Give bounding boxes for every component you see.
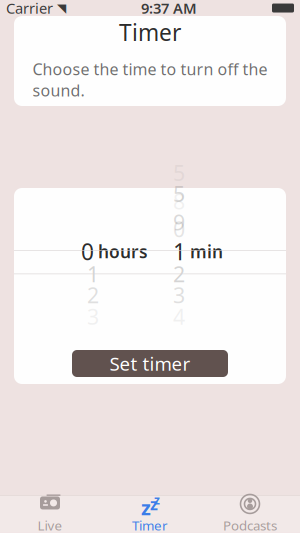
staticText: z	[154, 492, 160, 508]
staticText: Podcasts	[223, 516, 277, 533]
staticText: 3	[87, 302, 99, 331]
staticText: ◥	[57, 1, 66, 15]
button[interactable]: Live	[0, 496, 100, 533]
staticText: z	[150, 493, 158, 514]
staticText: hours	[98, 240, 148, 263]
staticText: 2	[173, 260, 185, 288]
staticText: 1	[87, 260, 99, 288]
staticText: 1	[173, 236, 186, 266]
staticText: Choose the time to turn off the sound.	[32, 58, 267, 101]
staticText: Timer	[119, 17, 181, 47]
staticText: 59	[173, 180, 185, 236]
staticText: 0	[81, 236, 94, 266]
staticText: min	[190, 240, 223, 263]
staticText: 3	[173, 281, 185, 309]
staticText: Carrier	[6, 0, 53, 18]
button[interactable]: Set timer	[72, 350, 228, 377]
staticText: Set timer	[109, 351, 190, 376]
button[interactable]: Podcasts	[200, 496, 300, 533]
staticText: Timer	[132, 516, 168, 533]
staticText: 2	[87, 281, 99, 309]
staticText: 9:37 AM	[141, 0, 197, 18]
staticText: z	[141, 494, 151, 521]
staticText: Live	[37, 516, 62, 533]
staticText: 58	[173, 159, 185, 215]
button[interactable]: z	[100, 496, 200, 533]
staticText: 4	[173, 302, 185, 331]
staticText: 0	[173, 215, 185, 243]
